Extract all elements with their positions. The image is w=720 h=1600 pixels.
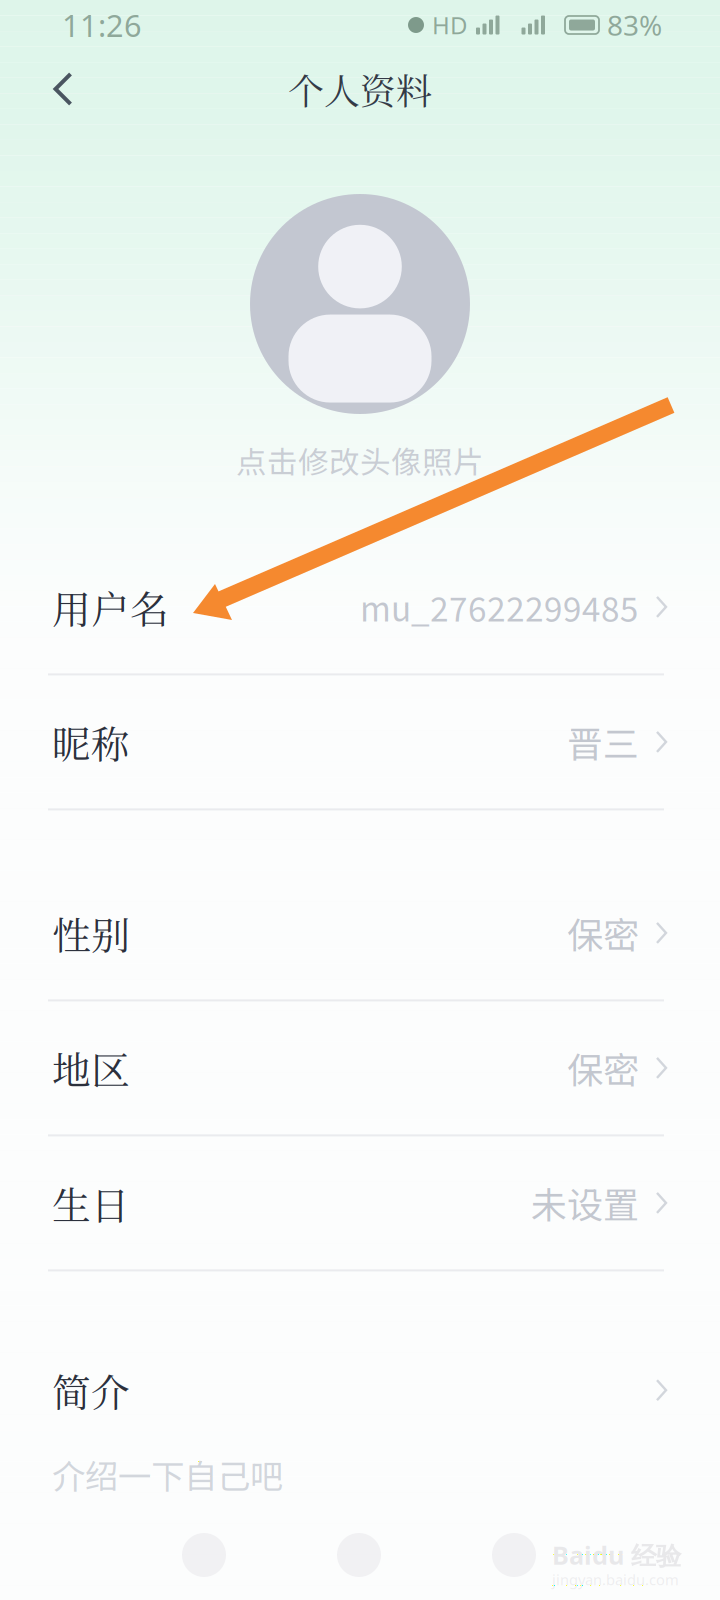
button[interactable]: 简介 — [0, 1362, 720, 1498]
staticText: 11:26 — [62, 5, 142, 45]
staticText: 晋三 — [567, 716, 639, 768]
staticText: 点击修改头像照片 — [236, 438, 484, 482]
staticText: Baidu 经验 — [552, 1538, 681, 1572]
staticText: 性别 — [52, 905, 130, 961]
button[interactable]: Back — [464, 1516, 564, 1594]
staticText: 83% — [607, 6, 662, 44]
staticText: 保密 — [567, 1042, 639, 1094]
staticText: jingyan.baidu.com — [552, 1570, 679, 1589]
staticText: HD — [432, 9, 468, 41]
staticText: 昵称 — [52, 714, 130, 770]
button[interactable]: Home — [309, 1516, 409, 1594]
button[interactable]: 昵称 — [0, 675, 720, 808]
button[interactable]: 性别 — [0, 866, 720, 999]
staticText: mu_27622299485 — [360, 583, 639, 631]
button[interactable]: 返回 — [0, 50, 100, 128]
staticText: 介绍一下自己吧 — [52, 1450, 283, 1498]
staticText: 简介 — [52, 1362, 130, 1418]
staticText: 生日 — [52, 1175, 130, 1231]
button[interactable]: 用户名 — [0, 540, 720, 673]
button[interactable]: 生日 — [0, 1136, 720, 1269]
staticText: 未设置 — [531, 1177, 639, 1229]
button[interactable]: Recents — [154, 1516, 254, 1594]
staticText: 个人资料 — [288, 63, 432, 115]
button[interactable]: 地区 — [0, 1001, 720, 1134]
staticText: 地区 — [52, 1040, 130, 1096]
staticText: 保密 — [567, 907, 639, 959]
button[interactable]: 点击修改头像照片 — [0, 194, 720, 482]
staticText: 用户名 — [52, 579, 169, 635]
